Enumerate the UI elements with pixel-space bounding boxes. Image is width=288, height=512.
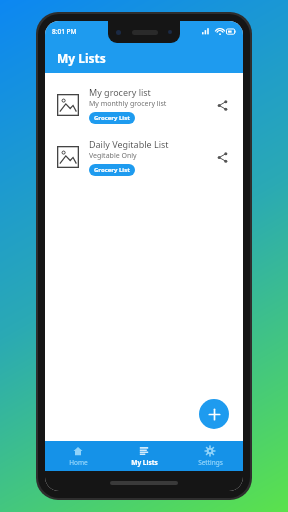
button[interactable]: Daily Vegitable List	[45, 131, 243, 183]
staticText: Home	[69, 458, 88, 467]
staticText: Settings	[198, 458, 223, 467]
staticText: Grocery List	[94, 166, 130, 174]
button[interactable]: Share	[211, 94, 233, 116]
button[interactable]: Add list	[199, 399, 229, 429]
staticText: 8:01 PM	[52, 27, 77, 36]
button[interactable]: Settings	[177, 441, 243, 471]
staticText: Daily Vegitable List	[89, 138, 169, 150]
button[interactable]: Home	[45, 441, 111, 471]
staticText: Grocery List	[94, 114, 130, 122]
staticText: My monthly grocery list	[89, 99, 167, 109]
staticText: Vegitable Only	[89, 151, 137, 161]
staticText: My grocery list	[89, 86, 151, 98]
button[interactable]: My Lists	[111, 441, 177, 471]
button[interactable]: Share	[211, 146, 233, 168]
staticText: My Lists	[57, 50, 106, 66]
staticText: My Lists	[131, 458, 158, 467]
button[interactable]: My grocery list	[45, 79, 243, 131]
